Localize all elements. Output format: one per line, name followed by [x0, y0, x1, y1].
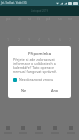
staticText: 4	[38, 37, 41, 42]
staticText: Ne	[21, 88, 27, 93]
staticText: 7	[69, 37, 72, 42]
button[interactable]: Tab 2	[15, 120, 31, 140]
staticText: 2	[18, 37, 21, 42]
staticText: Ano	[51, 88, 59, 93]
staticText: 3	[28, 37, 31, 42]
staticText: ne	[68, 16, 73, 21]
staticText: 5	[48, 37, 51, 42]
staticText: Přejete si zde zobrazovat informace o ud…	[13, 57, 66, 74]
staticText: Nezobrazovat znovu	[19, 77, 54, 82]
staticText: čt	[37, 16, 40, 21]
button[interactable]: Tab 5	[63, 120, 79, 140]
button[interactable]: Tab 3	[31, 120, 47, 140]
button[interactable]: Ne	[8, 82, 39, 98]
button[interactable]: Tab 4	[47, 120, 63, 140]
staticText: st	[28, 16, 31, 21]
button[interactable]: Nezobrazovat znovu	[13, 77, 71, 82]
staticText: pá	[46, 16, 51, 21]
staticText: út	[18, 16, 22, 21]
staticText: Listopad 2019	[31, 9, 49, 13]
staticText: po	[6, 16, 11, 21]
staticText: Připomínka	[8, 51, 71, 57]
staticText: 6	[59, 37, 62, 42]
button[interactable]: Tab 1	[0, 120, 15, 140]
button[interactable]: Ano	[39, 82, 71, 98]
staticText: so	[58, 16, 62, 21]
staticText: Jet. Sedlcat. Vodní 3G	[1, 1, 27, 5]
